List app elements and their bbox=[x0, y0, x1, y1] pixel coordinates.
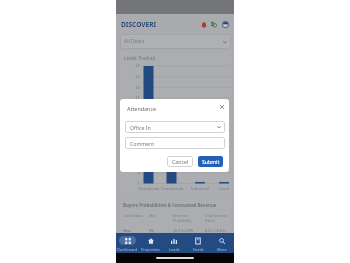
staticText: Mix bbox=[149, 213, 156, 218]
button[interactable]: Dashboard bbox=[116, 233, 139, 253]
staticText: Residential bbox=[136, 186, 162, 191]
staticText: Properties bbox=[141, 247, 160, 252]
staticText: 1 bbox=[122, 181, 140, 187]
button[interactable]: Cancel bbox=[167, 156, 193, 167]
staticText: 16 bbox=[122, 117, 140, 123]
staticText: Industrial bbox=[187, 186, 213, 191]
staticText: Commercial bbox=[159, 186, 185, 191]
staticText: More bbox=[217, 247, 227, 252]
button[interactable]: Notifications bbox=[199, 20, 208, 29]
staticText: 5.5 L / 5.5 Cr bbox=[205, 228, 227, 232]
staticText: 14 bbox=[122, 127, 140, 133]
staticText: Leads bbox=[169, 247, 180, 252]
button[interactable]: Comment bbox=[125, 137, 225, 149]
staticText: Land bbox=[211, 186, 231, 191]
staticText: Lead Status bbox=[123, 213, 144, 218]
staticText: New bbox=[123, 228, 131, 232]
button[interactable]: Office In bbox=[125, 121, 225, 133]
staticText: Attendance bbox=[127, 105, 157, 112]
staticText: Buyers Probabilities & Forecasted Revenu… bbox=[123, 202, 217, 208]
button[interactable]: Feeds bbox=[186, 233, 210, 253]
staticText: Submit bbox=[202, 158, 220, 165]
staticText: Dashboard bbox=[117, 247, 138, 252]
staticText: 4 bbox=[122, 170, 140, 176]
staticText: Deal Income Value bbox=[205, 213, 227, 223]
staticText: 10.7 m / 5% bbox=[173, 228, 194, 232]
staticText: 19 bbox=[122, 106, 140, 112]
staticText: Leads Tracked bbox=[124, 55, 156, 61]
button[interactable]: DISCOVERI bbox=[121, 17, 157, 31]
button[interactable]: More bbox=[210, 233, 234, 253]
button[interactable]: All Deals bbox=[120, 34, 231, 49]
staticText: DISCOVERI bbox=[121, 20, 157, 29]
button[interactable]: Leads bbox=[162, 233, 186, 253]
button[interactable]: Close bbox=[217, 102, 227, 112]
button[interactable]: Add user bbox=[209, 20, 218, 29]
staticText: Feeds bbox=[193, 247, 204, 252]
staticText: Revenue Probability bbox=[173, 213, 192, 223]
staticText: 26 bbox=[122, 74, 140, 80]
staticText: All Deals bbox=[124, 38, 145, 45]
staticText: 29 bbox=[122, 63, 140, 69]
staticText: 11 bbox=[122, 138, 140, 144]
button[interactable]: Submit bbox=[198, 156, 223, 167]
staticText: 29 bbox=[142, 61, 156, 66]
staticText: 5% bbox=[149, 228, 155, 232]
button[interactable]: Properties bbox=[139, 233, 162, 253]
staticText: 24 bbox=[122, 85, 140, 91]
staticText: Comment bbox=[130, 140, 155, 147]
button[interactable]: Profile bbox=[221, 20, 230, 29]
staticText: 21 bbox=[122, 95, 140, 101]
staticText: Office In bbox=[130, 124, 151, 131]
staticText: Cancel bbox=[172, 158, 189, 165]
